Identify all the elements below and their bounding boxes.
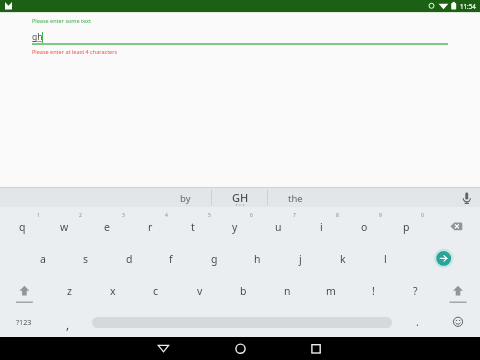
staticText: . xyxy=(416,315,419,329)
button[interactable]: e xyxy=(87,213,127,241)
staticText: the xyxy=(288,192,303,205)
staticText: z xyxy=(67,284,72,298)
button[interactable] xyxy=(218,337,262,360)
staticText: e xyxy=(104,220,110,234)
staticText: h xyxy=(254,252,261,266)
button[interactable]: by xyxy=(159,189,211,208)
staticText: ? xyxy=(413,284,418,298)
button[interactable] xyxy=(438,309,478,335)
button[interactable] xyxy=(426,244,462,272)
staticText: 0 xyxy=(421,212,424,219)
button[interactable]: u xyxy=(258,213,298,241)
button[interactable]: t xyxy=(173,213,213,241)
staticText: 2 xyxy=(79,212,82,219)
staticText: t xyxy=(191,220,195,234)
button[interactable]: o xyxy=(344,213,384,241)
staticText: p xyxy=(403,220,410,234)
button[interactable] xyxy=(24,14,456,56)
staticText: , xyxy=(66,316,70,332)
button[interactable]: n xyxy=(267,277,307,305)
staticText: c xyxy=(153,284,159,298)
button[interactable] xyxy=(437,212,475,240)
button[interactable]: p xyxy=(386,213,426,241)
button[interactable] xyxy=(456,188,478,207)
button[interactable]: a xyxy=(23,245,63,273)
staticText: 3 xyxy=(122,212,125,219)
staticText: k xyxy=(340,252,346,266)
button[interactable]: ?123 xyxy=(3,309,45,335)
staticText: 11:54 xyxy=(460,2,476,10)
staticText: ! xyxy=(372,284,375,298)
button[interactable]: w xyxy=(44,213,84,241)
staticText: f xyxy=(169,252,173,266)
staticText: 4 xyxy=(165,212,168,219)
button[interactable]: c xyxy=(136,277,176,305)
button[interactable]: y xyxy=(215,213,255,241)
staticText: ?123 xyxy=(16,317,32,327)
staticText: Please enter at least 4 characters xyxy=(32,48,118,55)
staticText: 1 xyxy=(37,212,40,219)
staticText: 9 xyxy=(379,212,382,219)
button[interactable]: ? xyxy=(395,277,435,305)
staticText: v xyxy=(197,284,203,298)
button[interactable]: k xyxy=(323,245,363,273)
button[interactable]: l xyxy=(365,245,405,273)
staticText: j xyxy=(299,252,302,266)
button[interactable]: m xyxy=(311,277,351,305)
staticText: u xyxy=(275,220,282,234)
button[interactable]: s xyxy=(66,245,106,273)
staticText: r xyxy=(148,220,153,234)
button[interactable]: h xyxy=(237,245,277,273)
staticText: o xyxy=(361,220,368,234)
staticText: y xyxy=(232,220,238,234)
staticText: 6 xyxy=(250,212,253,219)
button[interactable]: q xyxy=(2,213,42,241)
button[interactable] xyxy=(141,337,185,360)
button[interactable]: x xyxy=(93,277,133,305)
button[interactable]: , xyxy=(48,310,88,338)
button[interactable]: GH xyxy=(213,188,267,207)
button[interactable]: . xyxy=(397,308,437,336)
button[interactable]: ! xyxy=(353,277,393,305)
button[interactable]: f xyxy=(151,245,191,273)
button[interactable]: v xyxy=(180,277,220,305)
button[interactable] xyxy=(3,277,45,305)
staticText: i xyxy=(320,220,323,234)
button[interactable] xyxy=(296,337,340,360)
staticText: Please enter some text xyxy=(32,17,91,24)
staticText: n xyxy=(284,284,291,298)
staticText: b xyxy=(240,284,247,298)
staticText: a xyxy=(40,252,46,266)
staticText: x xyxy=(110,284,116,298)
button[interactable]: the xyxy=(269,189,321,208)
staticText: l xyxy=(384,252,387,266)
staticText: gh xyxy=(32,31,43,43)
staticText: 8 xyxy=(336,212,339,219)
staticText: d xyxy=(126,252,133,266)
staticText: m xyxy=(326,284,336,298)
button[interactable]: g xyxy=(194,245,234,273)
staticText: s xyxy=(83,252,89,266)
staticText: GH xyxy=(232,190,249,205)
staticText: w xyxy=(60,220,69,234)
button[interactable]: j xyxy=(280,245,320,273)
staticText: 5 xyxy=(208,212,211,219)
staticText: by xyxy=(180,192,191,205)
button[interactable] xyxy=(438,277,478,305)
staticText: 7 xyxy=(293,212,296,219)
button[interactable]: d xyxy=(109,245,149,273)
button[interactable]: b xyxy=(223,277,263,305)
staticText: g xyxy=(211,252,218,266)
button[interactable]: i xyxy=(301,213,341,241)
button[interactable]: r xyxy=(130,213,170,241)
staticText: q xyxy=(19,220,26,234)
button[interactable]: z xyxy=(49,277,89,305)
